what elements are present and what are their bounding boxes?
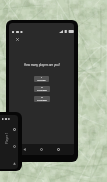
button[interactable]: Home: [10, 142, 18, 151]
staticText: 3 PLAYERS: [37, 96, 47, 102]
staticText: How many players are you?: [24, 63, 60, 67]
button[interactable]: Home: [36, 144, 47, 155]
staticText: Player 1: [5, 132, 9, 144]
button[interactable]: Recents: [10, 125, 18, 134]
staticText: 2 PLAYERS: [37, 86, 47, 92]
button[interactable]: Recents: [53, 144, 64, 155]
button[interactable]: 2 PLAYERS: [34, 86, 50, 92]
button[interactable]: Close: [13, 35, 22, 44]
button[interactable]: Back: [10, 159, 18, 168]
staticText: 1 PLAYER: [37, 76, 46, 82]
button[interactable]: 1 PLAYER: [34, 76, 49, 82]
button[interactable]: 3 PLAYERS: [34, 96, 50, 102]
button[interactable]: Back: [19, 144, 30, 155]
